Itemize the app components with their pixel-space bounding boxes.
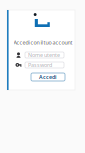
button[interactable]: Accedi xyxy=(31,73,65,81)
staticText: Accedi con il tuo account xyxy=(13,39,72,46)
staticText: Nome utente xyxy=(28,51,60,59)
staticText: Password xyxy=(28,61,52,69)
staticText: Accedi xyxy=(39,73,57,81)
